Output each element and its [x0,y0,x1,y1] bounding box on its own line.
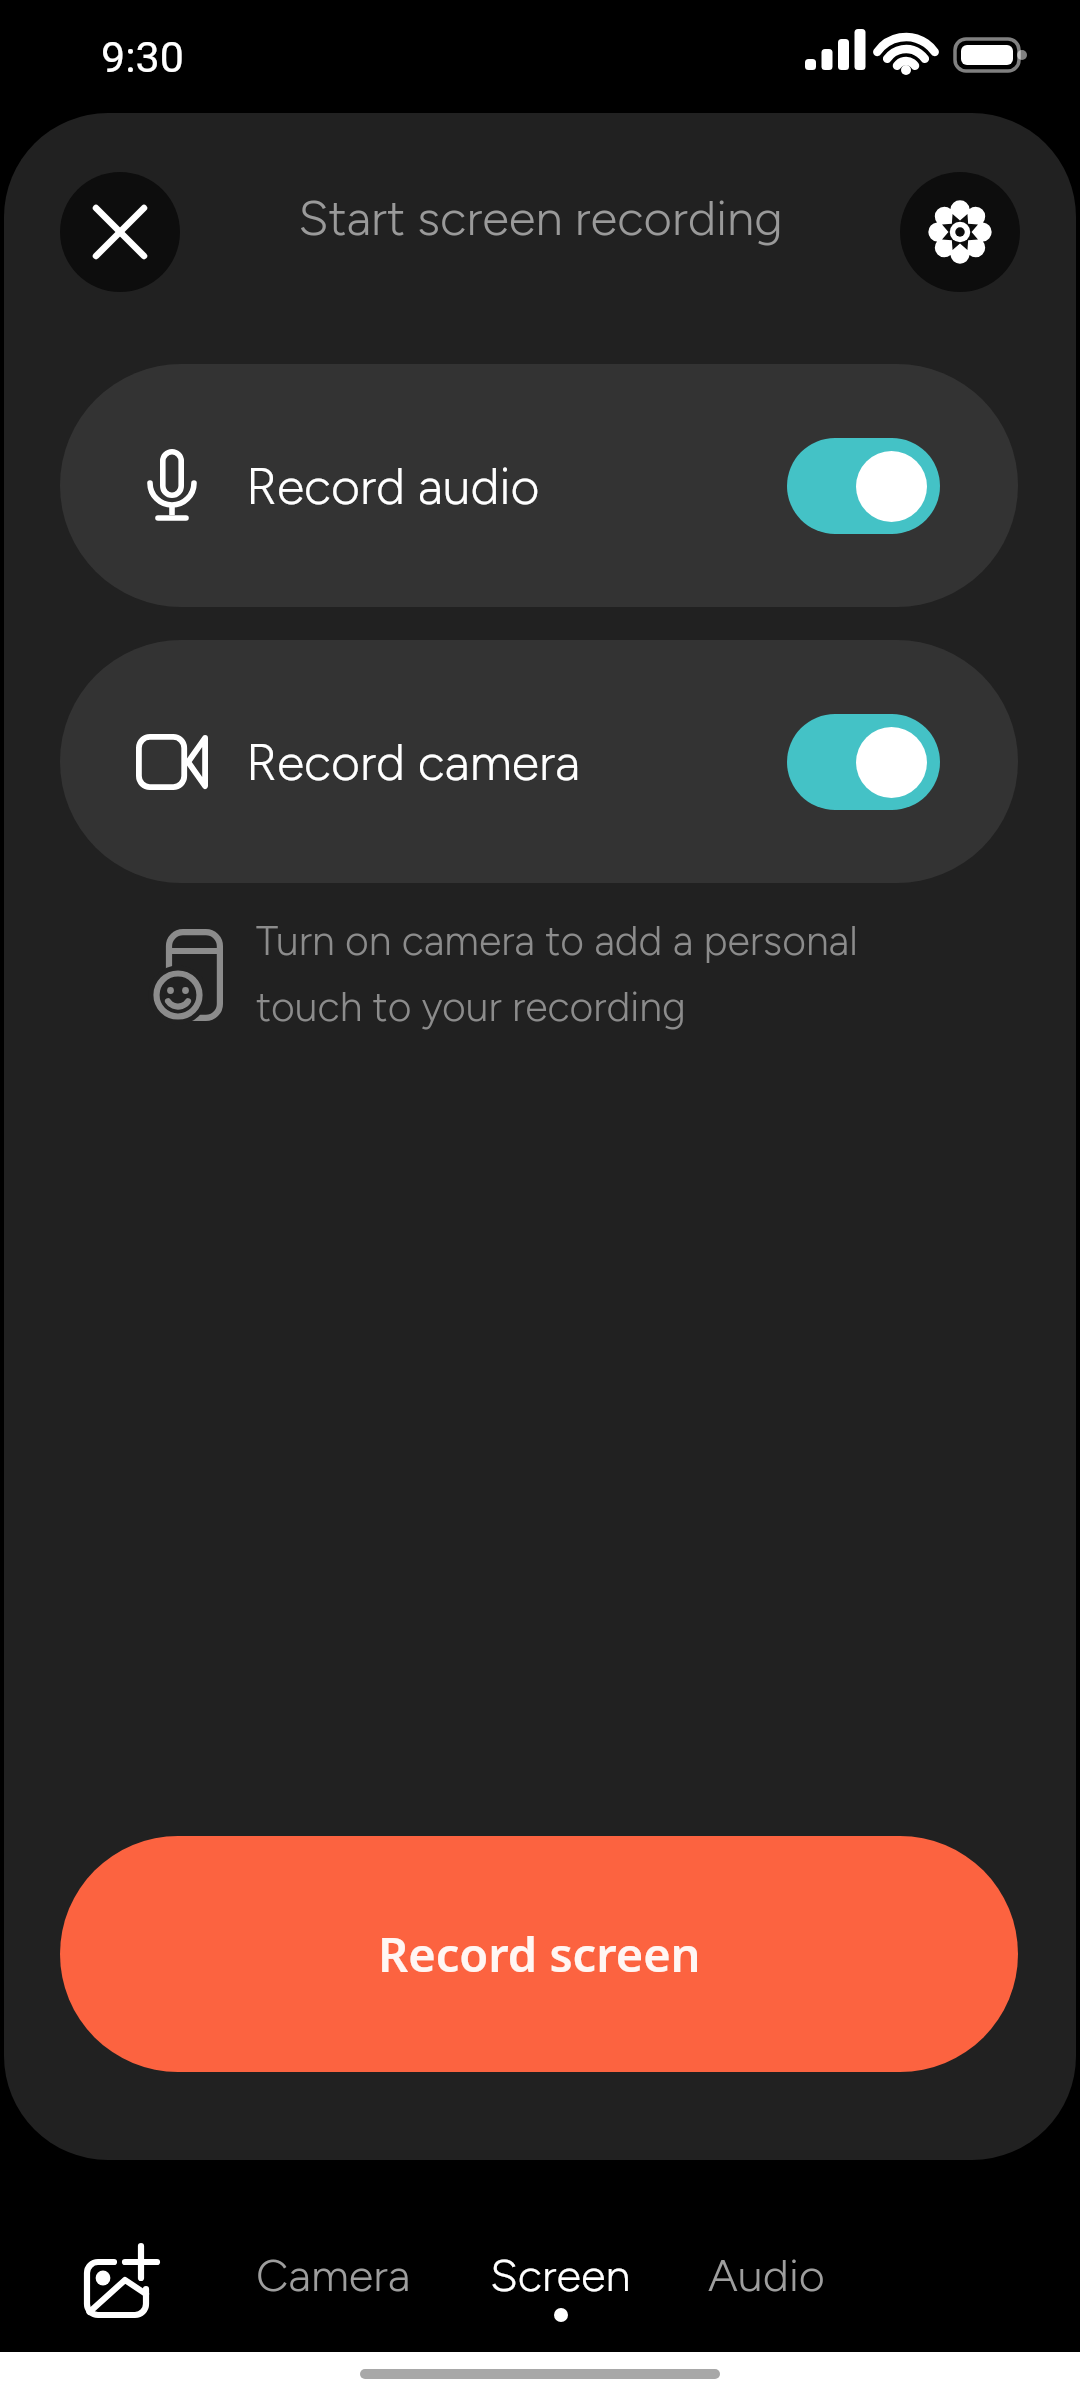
staticText: Screen [490,2248,631,2302]
button[interactable]: Record screen [60,1836,1018,2072]
button[interactable]: Add media [57,2234,183,2330]
staticText: Start screen recording [298,188,783,247]
staticText: Record screen [378,1922,701,1986]
button[interactable]: Record camera [60,640,1018,883]
staticText: Record audio [246,456,540,516]
button[interactable]: Record audio [60,364,1018,607]
button[interactable]: Settings [900,172,1020,292]
button[interactable]: Audio [708,2248,825,2302]
button[interactable]: Camera [256,2248,411,2302]
button[interactable]: Screen [490,2248,631,2322]
staticText: 9:30 [101,32,184,82]
staticText: Record camera [246,732,581,792]
button[interactable]: Close [60,172,180,292]
staticText: Turn on camera to add a personal touch t… [256,916,858,1032]
